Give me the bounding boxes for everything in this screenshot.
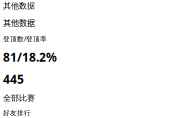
staticText: 81/18.2%: [3, 49, 57, 65]
staticText: 全部比赛: [3, 93, 35, 103]
staticText: 445: [3, 71, 24, 87]
staticText: 登顶数/登顶率: [3, 34, 47, 43]
staticText: 其他数据: [3, 17, 35, 28]
staticText: 好友排行: [3, 109, 31, 117]
staticText: 其他数据: [3, 1, 35, 11]
